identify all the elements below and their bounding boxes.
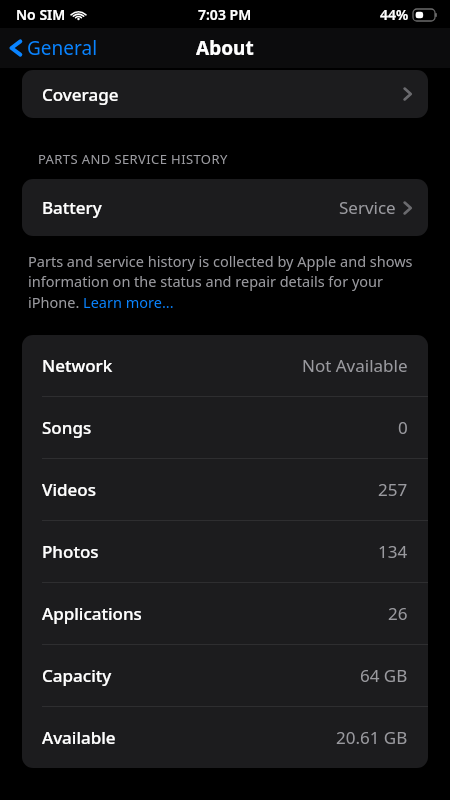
staticText: Not Available [302, 354, 408, 377]
button[interactable]: Applications [22, 583, 428, 644]
staticText: 7:03 PM [198, 5, 252, 24]
staticText: Battery [42, 196, 102, 219]
other: Open [403, 200, 412, 216]
button[interactable]: Videos [22, 459, 428, 520]
staticText: Applications [42, 602, 142, 625]
staticText: Parts and service history is collected b… [28, 251, 422, 313]
staticText: 0 [398, 416, 408, 439]
staticText: 257 [378, 478, 408, 501]
button[interactable]: General [0, 31, 108, 65]
button[interactable]: Songs [22, 397, 428, 458]
button[interactable]: Coverage [22, 70, 428, 118]
staticText: No SIM [16, 5, 66, 24]
staticText: Photos [42, 540, 99, 563]
staticText: Service [339, 196, 396, 219]
staticText: 20.61 GB [336, 726, 408, 749]
staticText: About [196, 35, 254, 61]
other: Open [403, 86, 412, 102]
staticText: 44% [380, 5, 409, 24]
staticText: Network [42, 354, 113, 377]
staticText: Songs [42, 416, 92, 439]
staticText: Coverage [42, 83, 119, 106]
staticText: Available [42, 726, 116, 749]
button[interactable]: Photos [22, 521, 428, 582]
button[interactable]: Network [22, 335, 428, 396]
staticText: Capacity [42, 664, 112, 687]
staticText: PARTS AND SERVICE HISTORY [38, 150, 228, 168]
staticText: Videos [42, 478, 96, 501]
staticText: General [27, 35, 98, 61]
button[interactable]: Available [22, 707, 428, 768]
staticText: 26 [388, 602, 408, 625]
staticText: 64 GB [360, 664, 408, 687]
button[interactable]: Battery [22, 179, 428, 236]
button[interactable]: Capacity [22, 645, 428, 706]
staticText: 134 [378, 540, 408, 563]
button[interactable]: Parts and service history is collected b… [28, 251, 422, 313]
